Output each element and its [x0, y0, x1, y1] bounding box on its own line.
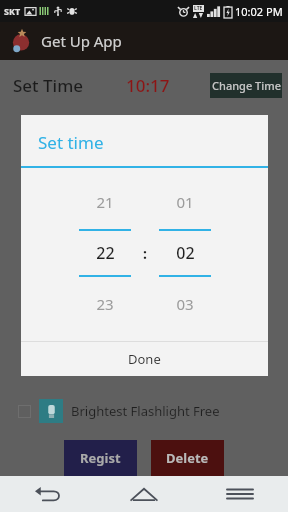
staticText: 10:17 [126, 74, 170, 97]
staticText: 01 [176, 192, 194, 212]
staticText: 22 [96, 242, 115, 264]
button[interactable]: Change Time [210, 73, 282, 98]
button[interactable]: 01 [159, 192, 211, 314]
button[interactable]: 21 [79, 192, 131, 314]
button[interactable]: Done [21, 342, 268, 376]
staticText: Regist [80, 449, 121, 467]
staticText: SKT [4, 5, 21, 17]
staticText: LTE [194, 5, 203, 12]
button[interactable]: Home [96, 476, 192, 512]
staticText: 10:02 PM [235, 4, 283, 19]
staticText: Set time [38, 131, 104, 154]
staticText: Set Time [13, 74, 84, 97]
staticText: Done [128, 350, 161, 368]
staticText: Get Up App [41, 31, 122, 51]
button[interactable]: Back [0, 476, 96, 512]
staticText: 23 [96, 294, 114, 314]
staticText: 21 [96, 192, 114, 212]
staticText: Brightest Flashlight Free [71, 402, 220, 420]
staticText: Delete [166, 449, 209, 467]
staticText: : [143, 244, 147, 263]
staticText: 03 [176, 294, 194, 314]
staticText: 02 [176, 242, 195, 264]
button[interactable]: Brightest Flashlight Free [0, 396, 288, 426]
staticText: Change Time [212, 78, 281, 93]
button[interactable]: Regist [64, 440, 137, 476]
button[interactable]: Menu [192, 476, 288, 512]
button[interactable]: Delete [151, 440, 224, 476]
